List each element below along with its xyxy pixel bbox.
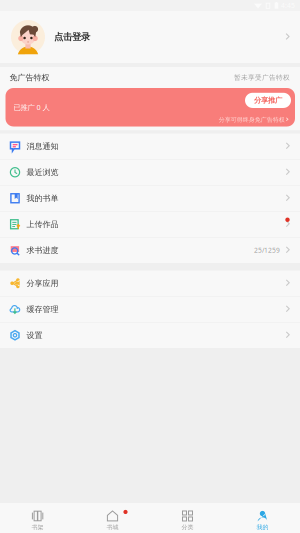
staticText: 分享推广: [254, 96, 282, 105]
staticText: 我的书单: [26, 193, 58, 203]
staticText: 求书进度: [26, 245, 58, 255]
button[interactable]: 上传作品: [0, 211, 300, 237]
button[interactable]: 书架: [0, 503, 75, 533]
staticText: 书城: [106, 523, 118, 531]
button[interactable]: 点击登录: [0, 11, 300, 63]
staticText: 暂未享受广告特权: [234, 73, 290, 82]
staticText: 分类: [181, 523, 193, 531]
staticText: 已推广 0 人: [13, 102, 49, 112]
button[interactable]: 求书进度: [0, 237, 300, 263]
staticText: 25/1259: [254, 246, 280, 255]
button[interactable]: 分类: [150, 503, 225, 533]
button[interactable]: 最近浏览: [0, 159, 300, 185]
staticText: 免广告特权: [9, 72, 49, 83]
button[interactable]: 书城: [75, 503, 150, 533]
staticText: 缓存管理: [26, 304, 58, 314]
button[interactable]: 分享推广: [245, 93, 291, 108]
staticText: 最近浏览: [26, 167, 58, 177]
staticText: 分享可得终身免广告特权: [219, 116, 285, 124]
staticText: 设置: [26, 330, 42, 340]
staticText: 我的: [256, 523, 268, 531]
staticText: 点击登录: [54, 31, 90, 43]
button[interactable]: 消息通知: [0, 133, 300, 159]
button[interactable]: 缓存管理: [0, 296, 300, 322]
button[interactable]: 设置: [0, 322, 300, 348]
staticText: 上传作品: [26, 219, 58, 229]
staticText: 书架: [31, 523, 43, 531]
button[interactable]: 分享可得终身免广告特权: [219, 116, 289, 124]
button[interactable]: 我的: [225, 503, 300, 533]
staticText: 消息通知: [26, 141, 58, 151]
button[interactable]: 我的书单: [0, 185, 300, 211]
button[interactable]: 分享应用: [0, 270, 300, 296]
staticText: 分享应用: [26, 278, 58, 288]
